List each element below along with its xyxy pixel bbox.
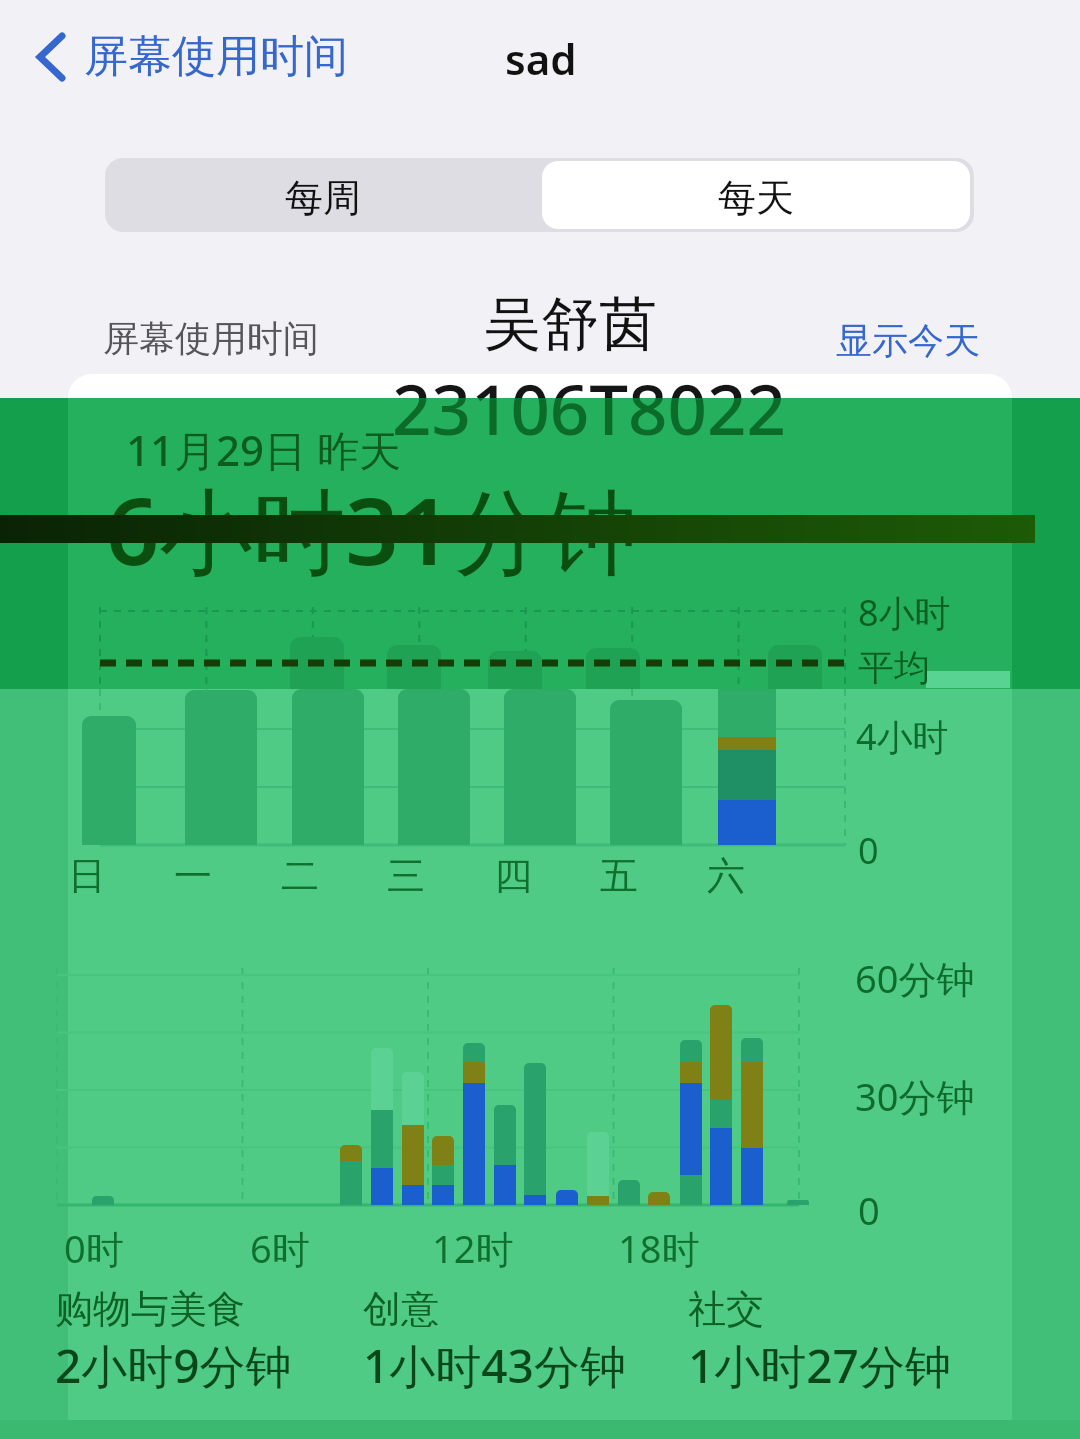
staticText: 0 [858,826,879,875]
button[interactable]: 每天 [542,161,970,229]
staticText: 12时 [432,1222,514,1274]
staticText: 1小时43分钟 [363,1334,626,1397]
staticText: 11月29日 昨天 [126,421,402,478]
staticText: 屏幕使用时间 [84,29,348,84]
button[interactable]: 屏幕使用时间 [30,25,370,85]
staticText: 0 [858,1184,880,1236]
staticText: 三 [387,852,425,900]
staticText: 8小时 [858,588,951,637]
staticText: 五 [600,852,638,900]
staticText: 社交 [688,1285,764,1333]
staticText: 0时 [64,1222,124,1274]
staticText: 18时 [618,1222,700,1274]
staticText: sad [505,30,577,87]
staticText: 30分钟 [855,1070,975,1122]
staticText: 二 [281,852,319,900]
staticText: 六 [707,852,745,900]
staticText: 每天 [718,174,794,222]
staticText: 购物与美食 [55,1285,245,1333]
button[interactable]: 显示今天 [836,318,1006,362]
staticText: 2小时9分钟 [55,1334,292,1397]
staticText: 每周 [285,174,361,222]
staticText: 屏幕使用时间 [103,316,319,361]
staticText: 日 [68,852,106,900]
staticText: 创意 [363,1285,439,1333]
staticText: 1小时27分钟 [688,1334,951,1397]
staticText: 显示今天 [836,318,980,362]
staticText: 4小时 [856,712,949,761]
button[interactable]: 每周 [105,158,539,232]
staticText: 平均 [858,645,930,690]
staticText: 60分钟 [855,952,975,1004]
staticText: 6小时31分钟 [106,466,638,593]
staticText: 四 [494,852,532,900]
staticText: 6时 [250,1222,310,1274]
staticText: 一 [174,852,212,900]
staticText: 吴舒茵 [483,288,657,361]
